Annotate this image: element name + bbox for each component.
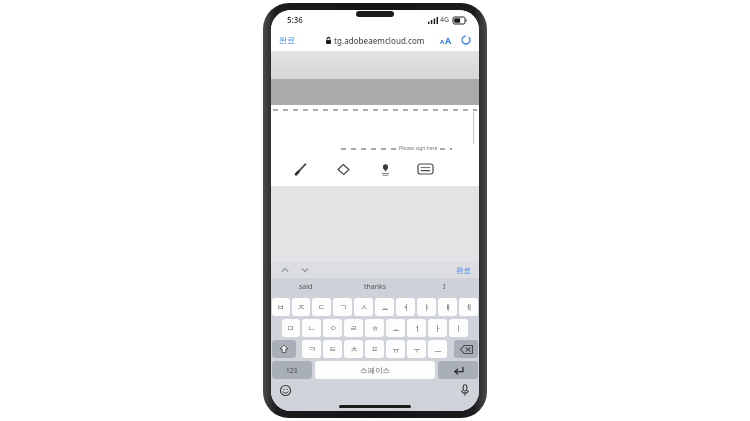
staticText: ㅛ (381, 302, 389, 312)
button[interactable]: ㅊ (344, 340, 363, 358)
staticText: ㅣ (455, 323, 463, 333)
button[interactable]: Next (299, 264, 311, 276)
staticText: ㅗ (392, 323, 400, 333)
button[interactable]: ㄹ (344, 319, 363, 337)
staticText: 123 (286, 366, 298, 375)
button[interactable]: Place signature (375, 159, 395, 179)
staticText: ㅜ (413, 344, 421, 354)
staticText: said (299, 282, 313, 292)
button[interactable]: ㄷ (312, 298, 331, 316)
button[interactable]: ㅜ (407, 340, 426, 358)
staticText: 스페이스 (360, 366, 390, 375)
staticText: 5:36 (287, 14, 303, 25)
staticText: ㅈ (297, 302, 305, 312)
staticText: ㅠ (392, 344, 400, 354)
staticText: ㅍ (371, 344, 379, 354)
staticText: ㅁ (287, 323, 295, 333)
staticText: thanks (364, 282, 387, 292)
staticText: ㄷ (318, 302, 326, 312)
button[interactable]: ㄱ (333, 298, 352, 316)
button[interactable]: ㅕ (396, 298, 415, 316)
staticText: ㅓ (413, 323, 421, 333)
button[interactable]: ㅓ (407, 319, 426, 337)
button[interactable]: Dictation (458, 383, 472, 397)
staticText: tg.adobeaemcloud.com (334, 35, 425, 46)
staticText: ㄱ (339, 302, 347, 312)
button[interactable]: Text size (438, 32, 454, 48)
button[interactable]: ㅅ (354, 298, 373, 316)
staticText: ㅇ (329, 323, 337, 333)
staticText: 4G (440, 15, 450, 25)
button[interactable]: ㅍ (365, 340, 384, 358)
button[interactable]: ㅡ (428, 340, 447, 358)
button[interactable]: 123 (272, 361, 312, 379)
button[interactable]: ㅋ (302, 340, 321, 358)
button[interactable]: ㄴ (302, 319, 321, 337)
button[interactable]: said (271, 278, 341, 296)
button[interactable]: Backspace (454, 340, 478, 358)
button[interactable]: thanks (341, 278, 410, 296)
button[interactable]: 스페이스 (315, 361, 435, 379)
button[interactable]: ㅛ (375, 298, 394, 316)
staticText: ㄴ (308, 323, 316, 333)
button[interactable]: ㅈ (292, 298, 310, 316)
button[interactable]: Previous (279, 264, 291, 276)
staticText: ㅑ (423, 302, 431, 312)
staticText: Please sign here (399, 145, 438, 152)
button[interactable]: ㅇ (323, 319, 342, 337)
button[interactable]: ㅎ (365, 319, 384, 337)
staticText: ㅎ (371, 323, 379, 333)
button[interactable]: ㅏ (428, 319, 447, 337)
staticText: ㅌ (329, 344, 337, 354)
button[interactable]: 완료 (279, 35, 295, 45)
button[interactable]: Emoji (278, 383, 292, 397)
button[interactable]: ㅠ (386, 340, 405, 358)
button[interactable]: 완료 (456, 266, 471, 275)
button[interactable]: ㅣ (449, 319, 468, 337)
button[interactable]: ㅌ (323, 340, 342, 358)
staticText: ㅕ (402, 302, 410, 312)
staticText: ㅅ (360, 302, 368, 312)
staticText: ㅊ (350, 344, 358, 354)
button[interactable]: Pen (291, 159, 311, 179)
button[interactable]: ㅁ (282, 319, 300, 337)
button[interactable]: ㅐ (438, 298, 457, 316)
button[interactable]: Shift (272, 340, 296, 358)
button[interactable]: ㅑ (417, 298, 436, 316)
button[interactable]: Keyboard (415, 159, 435, 179)
button[interactable]: Reload (460, 34, 472, 46)
staticText: I (443, 282, 446, 292)
button[interactable]: ㅗ (386, 319, 405, 337)
button[interactable]: Return (438, 361, 478, 379)
staticText: ㅐ (444, 302, 452, 312)
button[interactable]: Eraser (333, 159, 353, 179)
staticText: A (440, 38, 445, 46)
button[interactable]: I (410, 278, 479, 296)
button[interactable]: ㅂ (272, 298, 290, 316)
staticText: ㅔ (465, 302, 473, 312)
button[interactable]: ㅔ (459, 298, 478, 316)
staticText: ㅋ (308, 344, 316, 354)
staticText: ㅏ (434, 323, 442, 333)
staticText: ㅡ (434, 344, 442, 354)
staticText: ㅂ (277, 302, 285, 312)
staticText: ㄹ (350, 323, 358, 333)
button[interactable]: tg.adobeaemcloud.com (326, 35, 425, 46)
staticText: A (445, 34, 452, 46)
